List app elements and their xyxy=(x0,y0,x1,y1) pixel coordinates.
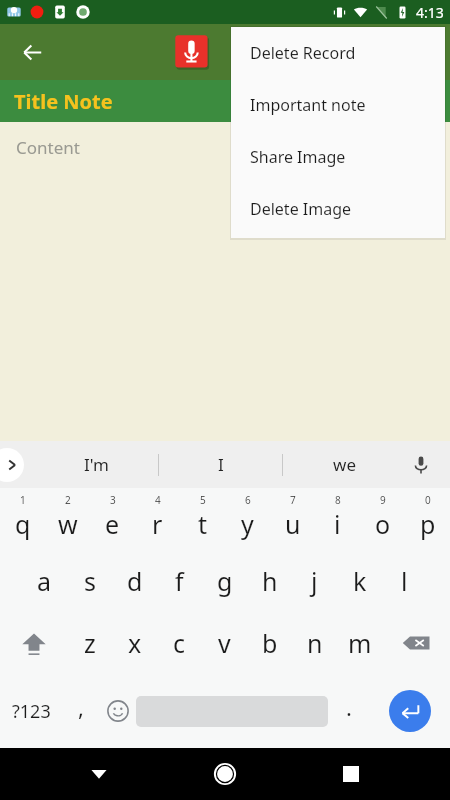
staticText: 6 xyxy=(245,493,251,507)
staticText: k xyxy=(353,564,367,598)
staticText: b xyxy=(262,626,278,660)
button[interactable]: Record voice xyxy=(173,33,211,71)
staticText: Title Note xyxy=(14,88,113,115)
staticText: Share Image xyxy=(250,146,346,168)
staticText: 8 xyxy=(335,493,341,507)
staticText: 4:13 xyxy=(416,3,444,22)
staticText: c xyxy=(173,626,186,660)
button[interactable]: Shift xyxy=(0,612,67,674)
staticText: j xyxy=(311,564,318,598)
button[interactable]: Share Image xyxy=(231,131,445,183)
staticText: u xyxy=(285,507,301,541)
button[interactable]: 0 xyxy=(405,488,450,550)
staticText: . xyxy=(346,692,352,722)
staticText: y xyxy=(241,507,254,541)
staticText: d xyxy=(127,564,143,598)
button[interactable]: k xyxy=(337,550,382,612)
staticText: m xyxy=(348,626,372,660)
button[interactable]: Home xyxy=(198,748,252,800)
button[interactable]: 8 xyxy=(315,488,360,550)
button[interactable]: 3 xyxy=(90,488,135,550)
button[interactable]: Back xyxy=(10,30,54,74)
button[interactable]: f xyxy=(157,550,202,612)
button[interactable]: Enter xyxy=(389,690,431,732)
button[interactable]: 7 xyxy=(270,488,315,550)
button[interactable]: Recent apps xyxy=(324,748,378,800)
staticText: o xyxy=(375,507,391,541)
staticText: g xyxy=(217,564,233,598)
button[interactable]: x xyxy=(112,612,157,674)
staticText: 7 xyxy=(290,493,296,507)
button[interactable]: Delete Image xyxy=(231,183,445,235)
button[interactable]: I'm xyxy=(34,441,158,488)
button[interactable]: n xyxy=(292,612,337,674)
staticText: we xyxy=(333,453,356,476)
button[interactable]: . xyxy=(328,674,369,748)
staticText: i xyxy=(334,507,341,541)
staticText: h xyxy=(262,564,278,598)
staticText: 3 xyxy=(110,493,116,507)
button[interactable]: Voice input xyxy=(406,450,436,480)
button[interactable]: d xyxy=(112,550,157,612)
button[interactable]: , xyxy=(62,674,99,748)
staticText: z xyxy=(84,626,96,660)
staticText: q xyxy=(15,507,31,541)
button[interactable]: ?123 xyxy=(0,674,62,748)
staticText: w xyxy=(58,507,78,541)
staticText: 1 xyxy=(20,493,26,507)
staticText: I'm xyxy=(84,453,109,476)
button[interactable]: Hide keyboard xyxy=(72,748,126,800)
button[interactable]: Delete Record xyxy=(231,27,445,79)
button[interactable]: 9 xyxy=(360,488,405,550)
staticText: n xyxy=(307,626,323,660)
button[interactable]: j xyxy=(292,550,337,612)
button[interactable]: 6 xyxy=(225,488,270,550)
staticText: 4 xyxy=(155,493,161,507)
staticText: f xyxy=(175,564,184,598)
button[interactable]: l xyxy=(382,550,427,612)
staticText: r xyxy=(152,507,163,541)
staticText: Content xyxy=(16,136,80,159)
staticText: ?123 xyxy=(12,699,51,724)
staticText: v xyxy=(218,626,231,660)
staticText: Important note xyxy=(250,94,366,116)
staticText: e xyxy=(105,507,120,541)
button[interactable]: I xyxy=(159,441,282,488)
staticText: s xyxy=(84,564,96,598)
button[interactable]: h xyxy=(247,550,292,612)
button[interactable]: s xyxy=(67,550,112,612)
button[interactable]: Important note xyxy=(231,79,445,131)
button[interactable]: g xyxy=(202,550,247,612)
staticText: l xyxy=(401,564,408,598)
staticText: 2 xyxy=(65,493,71,507)
staticText: a xyxy=(37,564,52,598)
staticText: 0 xyxy=(425,493,431,507)
staticText: 9 xyxy=(380,493,386,507)
staticText: p xyxy=(420,507,436,541)
button[interactable]: More suggestions xyxy=(0,448,24,482)
button[interactable]: 4 xyxy=(135,488,180,550)
staticText: , xyxy=(78,692,84,722)
button[interactable]: 1 xyxy=(0,488,45,550)
staticText: Delete Image xyxy=(250,198,352,220)
button[interactable]: Emoji xyxy=(99,674,136,748)
button[interactable]: a xyxy=(22,550,67,612)
staticText: I xyxy=(218,453,224,476)
button[interactable]: Backspace xyxy=(382,612,450,674)
staticText: Delete Record xyxy=(250,42,356,64)
button[interactable]: 2 xyxy=(45,488,90,550)
button[interactable]: b xyxy=(247,612,292,674)
button[interactable]: m xyxy=(337,612,382,674)
button[interactable]: we xyxy=(283,441,406,488)
staticText: 5 xyxy=(200,493,206,507)
button[interactable]: 5 xyxy=(180,488,225,550)
button[interactable]: z xyxy=(67,612,112,674)
staticText: x xyxy=(128,626,142,660)
staticText: t xyxy=(198,507,208,541)
button[interactable]: c xyxy=(157,612,202,674)
button[interactable]: v xyxy=(202,612,247,674)
